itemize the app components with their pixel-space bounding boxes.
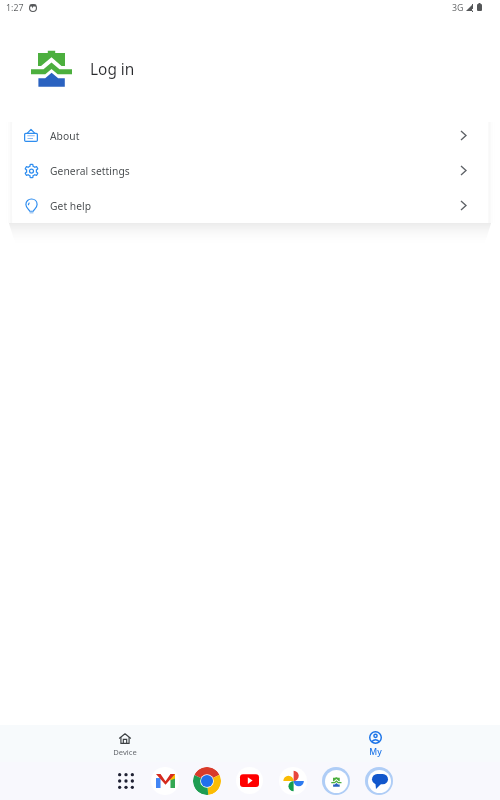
staticText: Get help xyxy=(50,199,92,213)
button[interactable]: My xyxy=(250,725,500,762)
staticText: About xyxy=(50,129,80,143)
button[interactable]: About xyxy=(12,118,488,153)
staticText: 1:27 xyxy=(6,2,24,14)
button[interactable]: All apps xyxy=(112,767,140,795)
button[interactable]: Photos xyxy=(279,767,307,795)
button[interactable]: Device xyxy=(0,725,250,762)
button[interactable]: Bank app xyxy=(322,767,350,795)
button[interactable]: Get help xyxy=(12,188,488,223)
staticText: 3G xyxy=(452,2,464,14)
staticText: My xyxy=(369,746,382,758)
staticText: General settings xyxy=(50,164,130,178)
staticText: Device xyxy=(113,747,137,757)
button[interactable]: YouTube xyxy=(236,767,263,794)
button[interactable]: Chrome xyxy=(193,767,221,795)
button[interactable]: General settings xyxy=(12,153,488,188)
button[interactable]: Messages xyxy=(365,767,393,795)
button[interactable]: Gmail xyxy=(151,767,179,795)
staticText: Log in xyxy=(90,59,135,80)
